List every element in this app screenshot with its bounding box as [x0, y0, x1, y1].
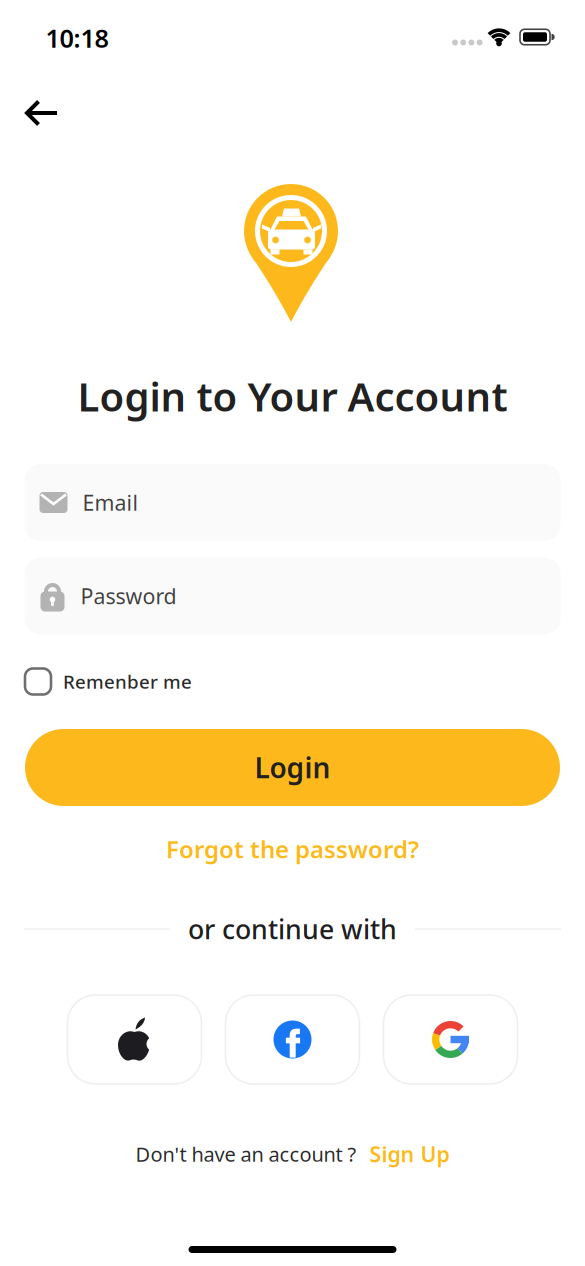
staticText: Login [254, 749, 330, 786]
staticText: Password [80, 582, 176, 610]
staticText: Login to Your Account [77, 369, 507, 422]
button[interactable]: Continue with Google [383, 995, 517, 1084]
staticText: Email [82, 488, 138, 517]
button[interactable]: Continue with Facebook [225, 995, 359, 1084]
button[interactable]: Remenber me [0, 668, 585, 694]
staticText: Sign Up [369, 1140, 449, 1168]
button[interactable]: Login [25, 729, 560, 806]
staticText: Forgot the password? [166, 833, 419, 865]
button[interactable]: Continue with Apple [67, 995, 201, 1084]
staticText: 10:18 [45, 21, 108, 55]
button[interactable]: Sign Up [369, 1140, 449, 1168]
button[interactable]: Back [24, 100, 60, 126]
staticText: Remenber me [63, 669, 192, 694]
button[interactable]: Forgot the password? [166, 833, 419, 865]
staticText: Don't have an account ? [135, 1141, 356, 1167]
staticText: or continue with [188, 911, 397, 947]
